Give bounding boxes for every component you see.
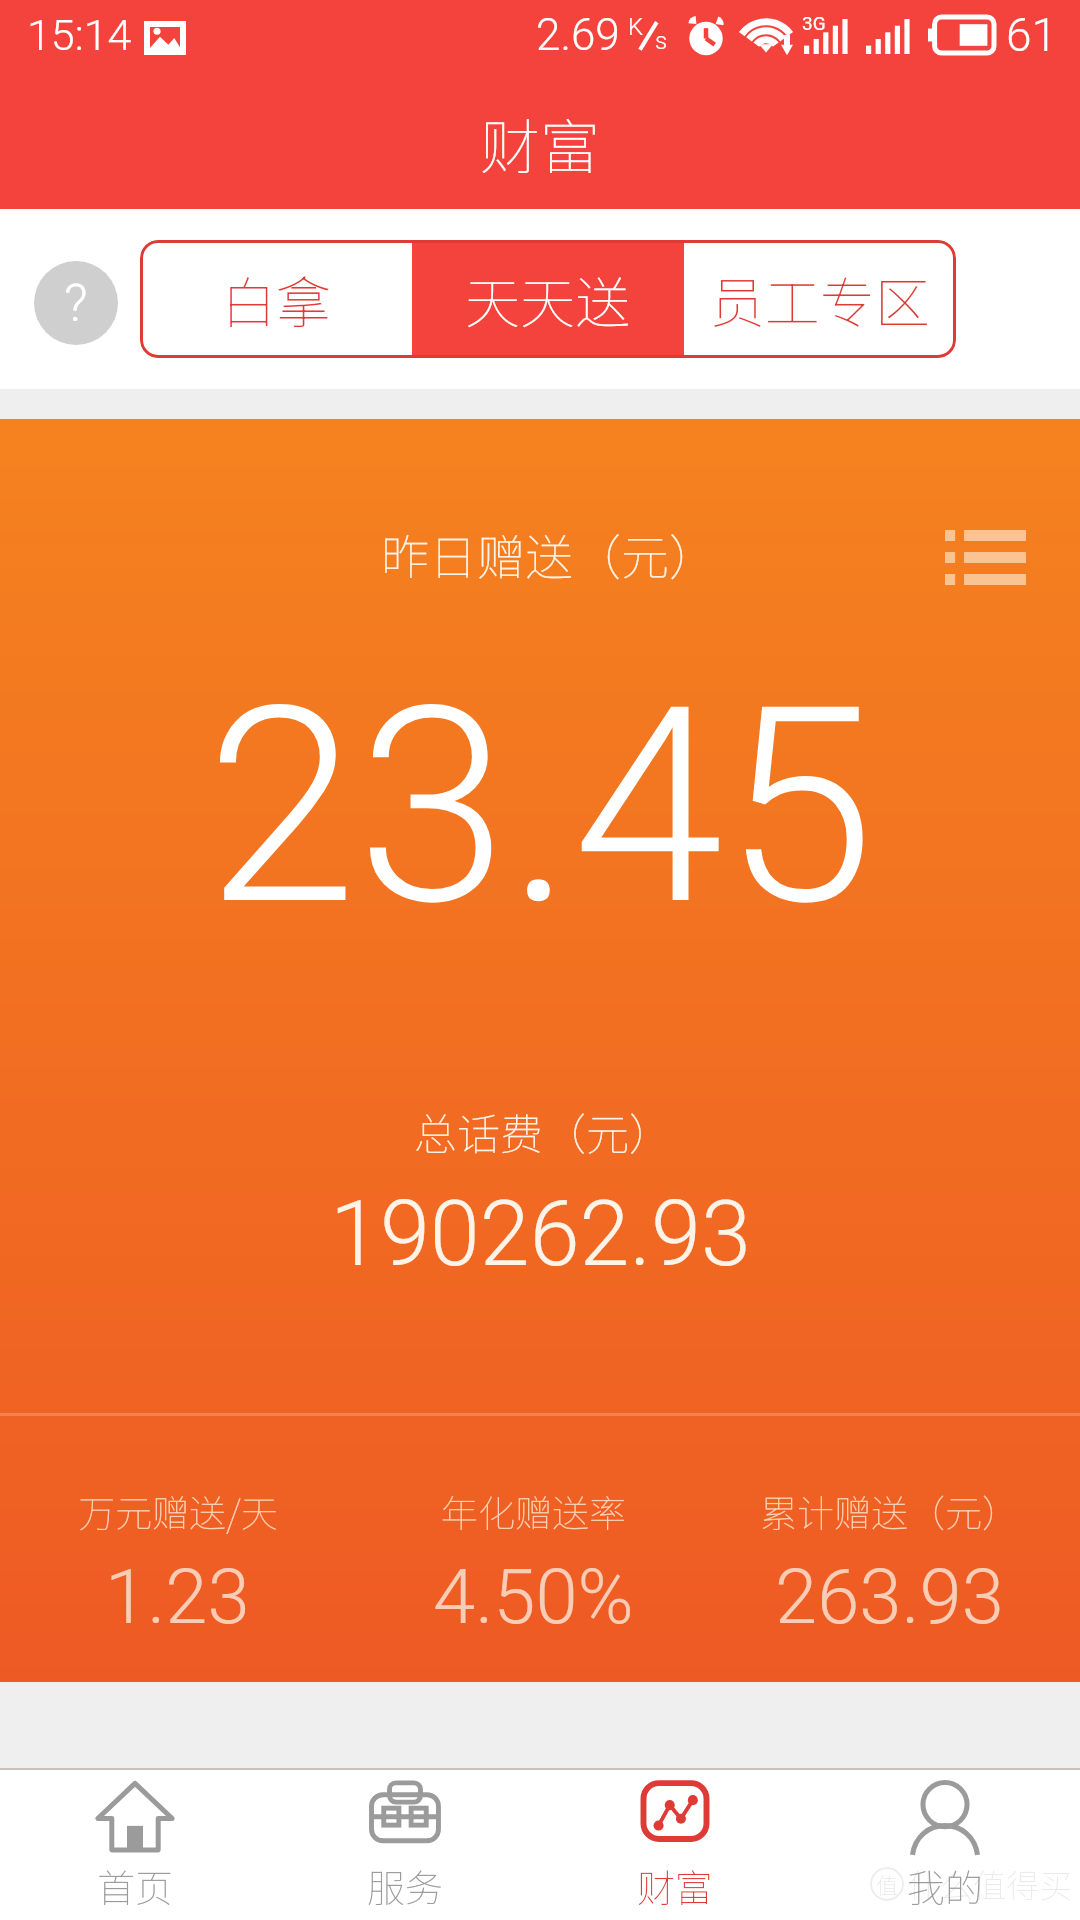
- staticText: 23.45: [206, 648, 875, 967]
- button[interactable]: 员工专区: [684, 240, 956, 358]
- staticText: 服务: [367, 1858, 444, 1913]
- staticText: 累计赠送（元）: [760, 1484, 1019, 1538]
- staticText: 白拿: [221, 259, 332, 339]
- button[interactable]: 财富: [540, 1770, 810, 1920]
- staticText: 2.69: [536, 9, 620, 61]
- staticText: 天天送: [465, 259, 631, 339]
- staticText: 财富: [637, 1858, 714, 1913]
- staticText: 万元赠送/天: [78, 1484, 278, 1538]
- staticText: 什么值得买: [907, 1860, 1072, 1908]
- button[interactable]: Help: [34, 261, 118, 345]
- staticText: 总话费（元）: [414, 1100, 672, 1162]
- button[interactable]: 我的: [810, 1770, 1080, 1920]
- button[interactable]: List: [945, 530, 1026, 585]
- staticText: 190262.93: [330, 1182, 751, 1287]
- button[interactable]: 白拿: [140, 240, 412, 358]
- staticText: 值: [876, 1868, 899, 1900]
- staticText: s: [655, 27, 668, 55]
- staticText: 61: [1006, 8, 1058, 62]
- staticText: 263.93: [775, 1552, 1004, 1641]
- staticText: 3G: [802, 12, 826, 34]
- staticText: 我的: [907, 1858, 984, 1913]
- staticText: 15:14: [27, 10, 132, 60]
- button[interactable]: 服务: [270, 1770, 540, 1920]
- staticText: K: [628, 13, 644, 41]
- staticText: 年化赠送率: [441, 1484, 626, 1538]
- button[interactable]: 天天送: [412, 240, 684, 358]
- staticText: ?: [64, 273, 88, 334]
- button[interactable]: 首页: [0, 1770, 270, 1920]
- staticText: 昨日赠送（元）: [381, 519, 718, 589]
- staticText: 1.23: [105, 1552, 250, 1641]
- staticText: 首页: [97, 1858, 174, 1913]
- staticText: 4.50%: [433, 1552, 634, 1641]
- staticText: 财富: [480, 99, 600, 186]
- staticText: 员工专区: [710, 259, 931, 339]
